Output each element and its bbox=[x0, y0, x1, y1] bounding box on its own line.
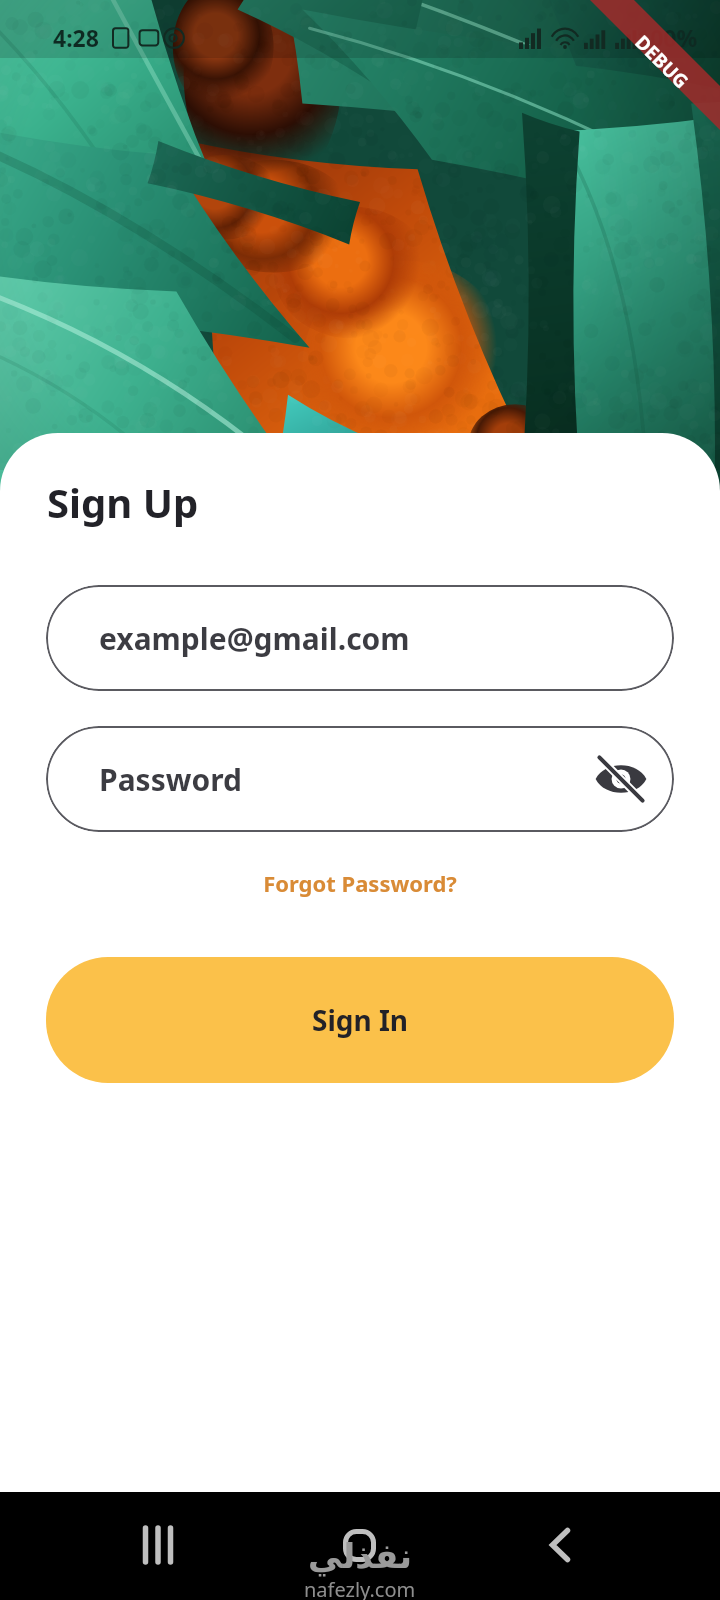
button[interactable]: Home bbox=[319, 1492, 399, 1600]
staticText: Password bbox=[99, 759, 242, 800]
staticText: 4:28 bbox=[53, 22, 99, 53]
staticText: Forgot Password? bbox=[263, 868, 457, 898]
button[interactable]: Forgot Password? bbox=[0, 868, 720, 898]
button[interactable]: Back bbox=[520, 1492, 600, 1600]
staticText: Sign Up bbox=[47, 475, 199, 529]
staticText: Sign In bbox=[312, 1001, 409, 1039]
button[interactable]: Show password bbox=[586, 744, 656, 814]
button[interactable]: Recents bbox=[118, 1492, 198, 1600]
staticText: نفذلي bbox=[308, 1536, 413, 1576]
staticText: 100% bbox=[637, 22, 698, 53]
button[interactable]: Password bbox=[46, 726, 674, 832]
button[interactable]: example@gmail.com bbox=[46, 585, 674, 691]
staticText: example@gmail.com bbox=[99, 618, 410, 659]
button[interactable]: Sign In bbox=[46, 957, 674, 1083]
staticText: DEBUG bbox=[629, 29, 695, 95]
staticText: nafezly.com bbox=[304, 1576, 416, 1600]
